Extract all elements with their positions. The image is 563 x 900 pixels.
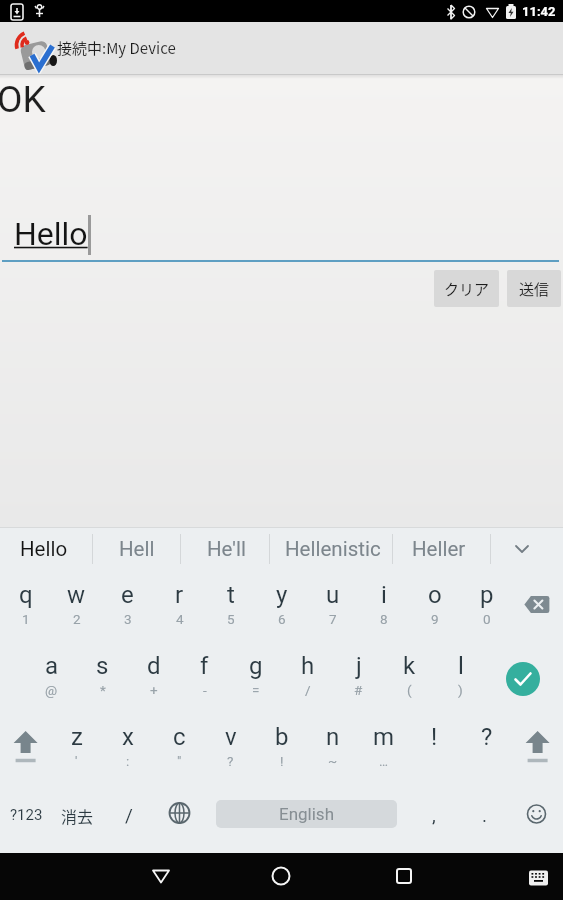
staticText: q [19, 581, 33, 609]
button[interactable]: Hello [14, 527, 74, 570]
staticText: r [175, 581, 184, 609]
staticText: / [125, 804, 133, 826]
staticText: He'll [207, 537, 246, 561]
button[interactable] [0, 712, 51, 782]
staticText: s [96, 652, 109, 680]
staticText: ( [407, 682, 412, 698]
button[interactable]: c [154, 712, 205, 782]
button[interactable]: b [256, 712, 307, 782]
button[interactable]: ? [461, 712, 512, 782]
staticText: ? [481, 723, 493, 751]
button[interactable] [512, 712, 563, 782]
button[interactable]: m [358, 712, 409, 782]
staticText: g [249, 652, 263, 680]
button[interactable]: Hell [106, 527, 167, 570]
button[interactable]: . [459, 783, 510, 853]
staticText: d [147, 652, 161, 680]
staticText: … [379, 753, 389, 769]
staticText: j [356, 652, 362, 680]
button[interactable]: q [0, 570, 51, 640]
button[interactable] [136, 853, 186, 900]
button[interactable]: l [435, 641, 486, 711]
button[interactable]: g [230, 641, 281, 711]
button[interactable]: x [102, 712, 153, 782]
staticText: 0 [483, 611, 491, 627]
button[interactable]: e [102, 570, 153, 640]
button[interactable]: w [51, 570, 102, 640]
button[interactable]: Heller [399, 527, 478, 570]
staticText: b [275, 723, 289, 751]
button[interactable]: He'll [194, 527, 259, 570]
staticText: 6 [278, 611, 286, 627]
button[interactable]: , [408, 783, 459, 853]
button[interactable] [512, 570, 563, 640]
staticText: * [100, 682, 106, 698]
staticText: t [227, 581, 235, 609]
staticText: w [67, 581, 86, 609]
staticText: . [482, 804, 488, 826]
staticText: c [173, 723, 186, 751]
button[interactable]: / [103, 783, 154, 853]
button[interactable]: 消去 [52, 783, 103, 853]
button[interactable] [154, 783, 205, 853]
staticText: z [71, 723, 83, 751]
staticText: / [305, 682, 311, 698]
staticText: l [458, 652, 464, 680]
button[interactable]: t [205, 570, 256, 640]
button[interactable]: k [384, 641, 435, 711]
button[interactable]: z [51, 712, 102, 782]
staticText: Heller [412, 537, 466, 561]
button[interactable] [514, 853, 563, 900]
button[interactable]: f [179, 641, 230, 711]
staticText: u [326, 581, 340, 609]
staticText: - [203, 682, 207, 698]
staticText: f [200, 652, 209, 680]
button[interactable]: o [409, 570, 460, 640]
staticText: 3 [124, 611, 132, 627]
staticText: ~ [328, 753, 338, 769]
staticText: Hello [20, 537, 68, 561]
staticText: i [381, 581, 387, 609]
button[interactable]: s [77, 641, 128, 711]
button[interactable]: クリア [434, 270, 499, 307]
button[interactable]: 送信 [507, 270, 561, 307]
button[interactable]: y [256, 570, 307, 640]
button[interactable]: a [26, 641, 77, 711]
button[interactable]: r [154, 570, 205, 640]
button[interactable]: ?123 [0, 783, 52, 853]
button[interactable] [500, 527, 545, 570]
button[interactable]: ! [409, 712, 460, 782]
button[interactable]: h [282, 641, 333, 711]
staticText: , [432, 804, 436, 826]
staticText: e [121, 581, 134, 609]
button[interactable]: u [307, 570, 358, 640]
button[interactable]: j [333, 641, 384, 711]
button[interactable] [510, 783, 561, 853]
staticText: ! [431, 723, 438, 751]
staticText: 送信 [519, 278, 550, 300]
staticText: h [301, 652, 315, 680]
button[interactable]: d [128, 641, 179, 711]
button[interactable] [256, 853, 306, 900]
button[interactable]: i [358, 570, 409, 640]
staticText: # [354, 682, 363, 698]
staticText: ) [458, 682, 463, 698]
staticText: p [480, 581, 494, 609]
staticText: 1 [22, 611, 30, 627]
staticText: ? [227, 753, 234, 769]
button[interactable]: n [307, 712, 358, 782]
staticText: 4 [176, 611, 184, 627]
button[interactable] [506, 662, 540, 696]
button[interactable]: p [461, 570, 512, 640]
staticText: 2 [73, 611, 81, 627]
staticText: n [326, 723, 340, 751]
staticText: 接続中:My Device [57, 37, 176, 59]
button[interactable]: Hellenistic [275, 527, 390, 570]
staticText: m [373, 723, 395, 751]
button[interactable] [379, 853, 429, 900]
staticText: " [177, 753, 182, 769]
staticText: x [122, 723, 134, 751]
staticText: クリア [444, 278, 490, 300]
button[interactable]: v [205, 712, 256, 782]
button[interactable]: English [216, 800, 397, 828]
